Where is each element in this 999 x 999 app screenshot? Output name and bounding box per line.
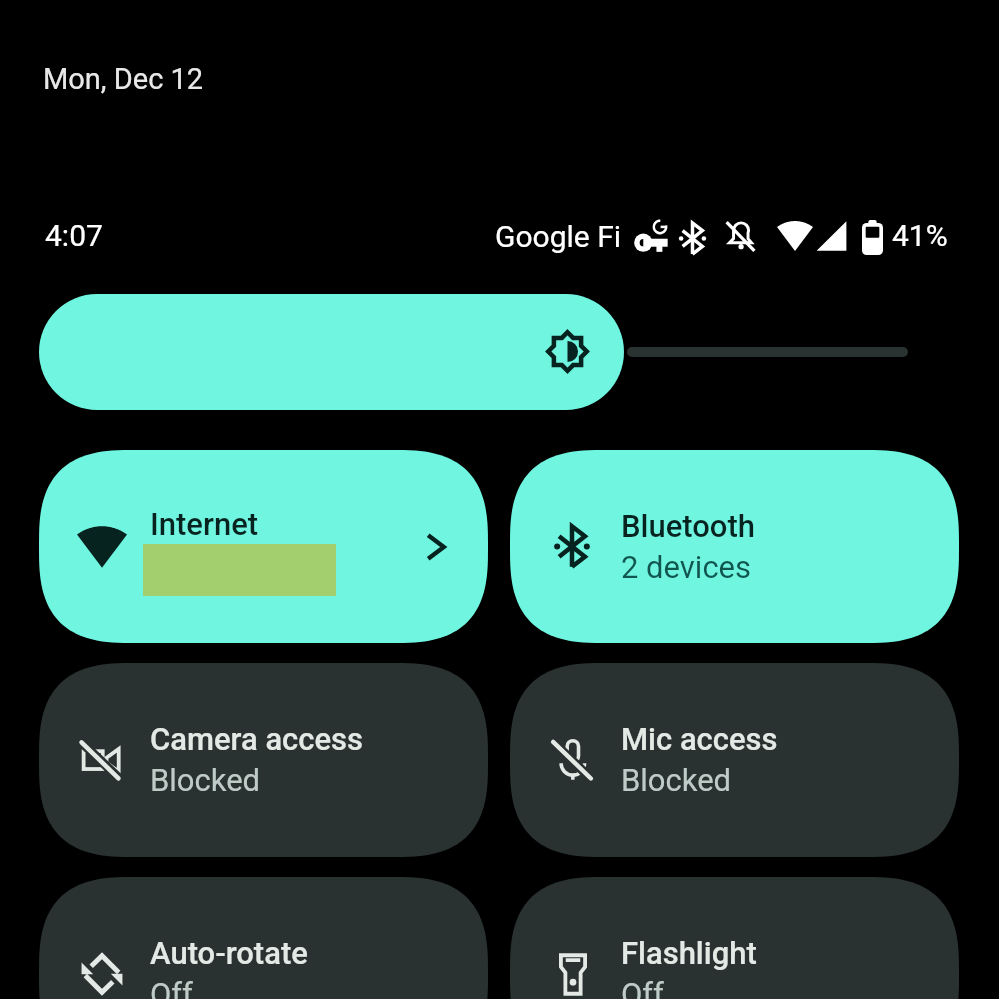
staticText: 41% [892,218,948,253]
staticText: 4:07 [45,218,103,253]
button[interactable]: Open Internet settings [399,511,471,583]
button[interactable]: Brightness [39,294,959,410]
staticText: Google Fi [495,219,622,254]
staticText: Internet [150,506,259,542]
staticText: Blocked [150,762,261,798]
staticText: Off [621,976,664,999]
button[interactable]: Mic access [510,663,959,857]
staticText: 2 devices [621,549,752,585]
button[interactable]: Camera access [39,663,488,857]
staticText: Auto-rotate [150,935,308,971]
staticText: Flashlight [621,935,757,971]
staticText: Mic access [621,721,778,757]
staticText: Blocked [621,762,732,798]
button[interactable]: Bluetooth [510,450,959,643]
button[interactable]: Auto-rotate [39,877,488,999]
button[interactable]: Flashlight [510,877,959,999]
staticText: Mon, Dec 12 [43,62,204,96]
staticText: Off [150,976,193,999]
staticText: Camera access [150,721,363,757]
button[interactable]: Internet [39,450,488,643]
staticText: Bluetooth [621,508,756,544]
